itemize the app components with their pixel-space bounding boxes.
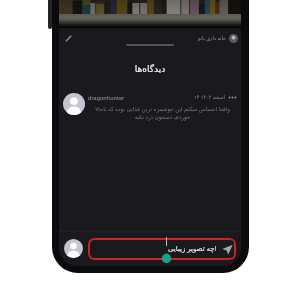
button[interactable]: خانه داری بانو [194, 34, 241, 43]
button[interactable]: چه تصویر زیبایی! [88, 238, 236, 260]
staticText: dragonhunter [88, 94, 125, 101]
button[interactable]: Send [222, 244, 233, 255]
staticText: ۱۴ اسفند ۱۴۰۲ [194, 94, 225, 101]
button[interactable]: More options [228, 93, 237, 102]
staticText: چه تصویر زیبایی! [168, 244, 217, 254]
button[interactable]: Edit [59, 34, 73, 43]
staticText: دیدگاه‌ها [59, 64, 241, 74]
staticText: واقعا احساس میکنم این خوشمزه ترین غذایی … [88, 105, 237, 121]
staticText: خانه داری بانو [198, 35, 227, 42]
button[interactable]: dragonhunter [59, 93, 241, 121]
